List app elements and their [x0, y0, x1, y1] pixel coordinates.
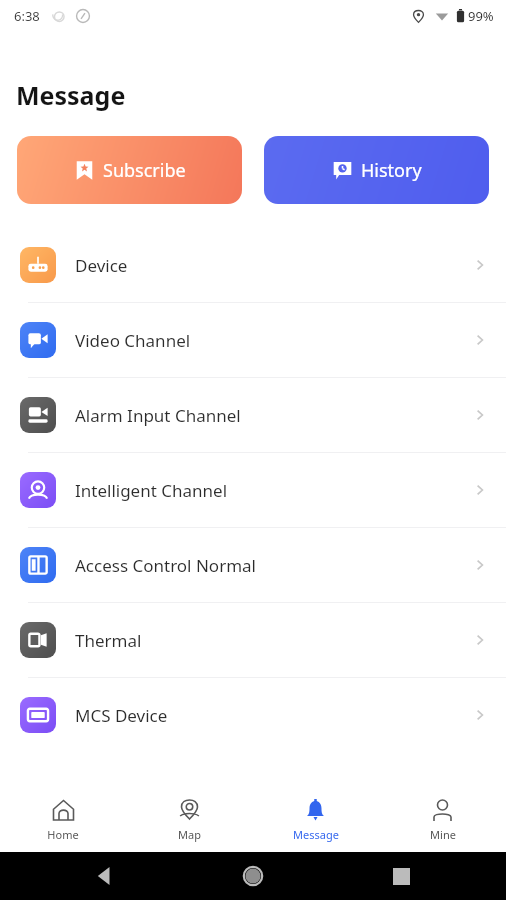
button[interactable]: Message — [252, 790, 379, 852]
button[interactable]: Home — [0, 790, 126, 852]
staticText: Video Channel — [75, 329, 191, 352]
button[interactable]: Device — [0, 228, 506, 302]
staticText: Alarm Input Channel — [75, 404, 241, 427]
staticText: Message — [16, 78, 126, 112]
button[interactable]: History — [264, 136, 489, 204]
button[interactable]: Thermal — [0, 603, 506, 677]
button[interactable]: Video Channel — [0, 303, 506, 377]
staticText: Intelligent Channel — [75, 479, 228, 502]
other: Back — [96, 867, 114, 885]
staticText: Subscribe — [103, 158, 186, 183]
staticText: Home — [47, 827, 79, 842]
button[interactable]: Map — [126, 790, 252, 852]
staticText: MCS Device — [75, 704, 168, 727]
staticText: Mine — [430, 827, 456, 842]
button[interactable]: Access Control Normal — [0, 528, 506, 602]
staticText: History — [361, 158, 422, 183]
staticText: Map — [178, 827, 201, 842]
staticText: 99% — [468, 7, 494, 25]
staticText: Message — [293, 827, 339, 842]
button[interactable]: MCS Device — [0, 678, 506, 752]
other: Home — [243, 866, 263, 886]
staticText: Device — [75, 254, 128, 277]
button[interactable]: Alarm Input Channel — [0, 378, 506, 452]
staticText: 6:38 — [14, 7, 40, 25]
button[interactable]: Intelligent Channel — [0, 453, 506, 527]
button[interactable]: Subscribe — [17, 136, 242, 204]
button[interactable]: Mine — [379, 790, 506, 852]
staticText: Thermal — [75, 629, 142, 652]
staticText: Access Control Normal — [75, 554, 256, 577]
